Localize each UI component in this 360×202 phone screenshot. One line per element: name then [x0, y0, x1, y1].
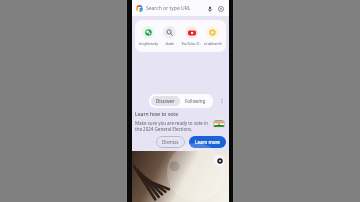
staticText: eLabharthi: [204, 41, 222, 46]
staticText: Following: [185, 98, 206, 104]
staticText: brightstudy…: [138, 41, 159, 46]
staticText: Make sure you are ready to vote in the 2…: [135, 120, 209, 132]
button[interactable]: brightstudy…: [138, 25, 159, 47]
staticText: Discover: [156, 98, 175, 104]
button[interactable]: Source logo: [214, 155, 225, 166]
button[interactable]: shala darpa…: [159, 25, 180, 47]
button[interactable]: Learn more: [189, 136, 226, 148]
button[interactable]: YouTube D…: [181, 25, 202, 47]
staticText: Dismiss: [162, 139, 179, 145]
button[interactable]: eLabharthi: [202, 25, 223, 47]
staticText: Learn more: [195, 139, 220, 145]
button[interactable]: Following: [180, 96, 211, 106]
staticText: Search or type URL: [146, 5, 191, 12]
button[interactable]: [132, 151, 229, 202]
button[interactable]: Dismiss: [156, 136, 185, 148]
staticText: shala darpa…: [159, 41, 180, 46]
button[interactable]: Discover: [151, 96, 180, 106]
staticText: Learn how to vote: [135, 111, 179, 118]
staticText: YouTube D…: [181, 41, 202, 46]
button[interactable]: Search or type URL: [132, 0, 229, 16]
button[interactable]: More options: [217, 96, 227, 106]
button[interactable]: Google Lens: [216, 4, 225, 13]
button[interactable]: Voice search: [205, 4, 214, 13]
